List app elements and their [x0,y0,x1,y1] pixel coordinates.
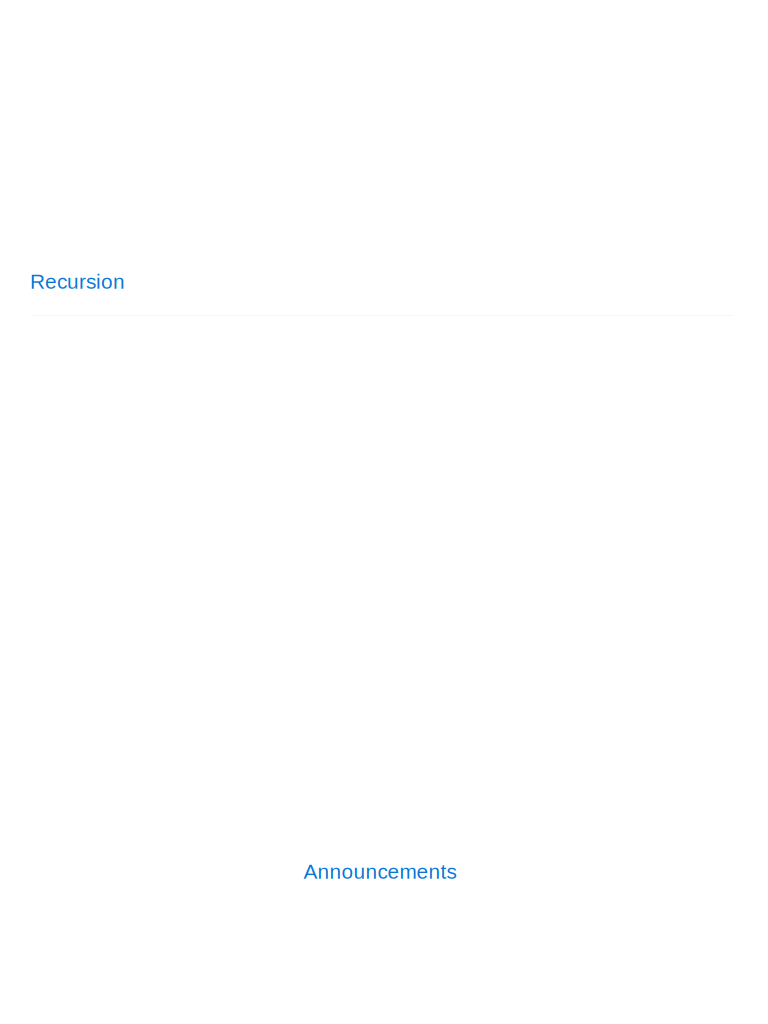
staticText: Announcements [303,860,456,883]
button[interactable]: Announcements [303,860,456,883]
staticText: Recursion [30,270,125,293]
button[interactable]: Recursion [30,270,125,293]
